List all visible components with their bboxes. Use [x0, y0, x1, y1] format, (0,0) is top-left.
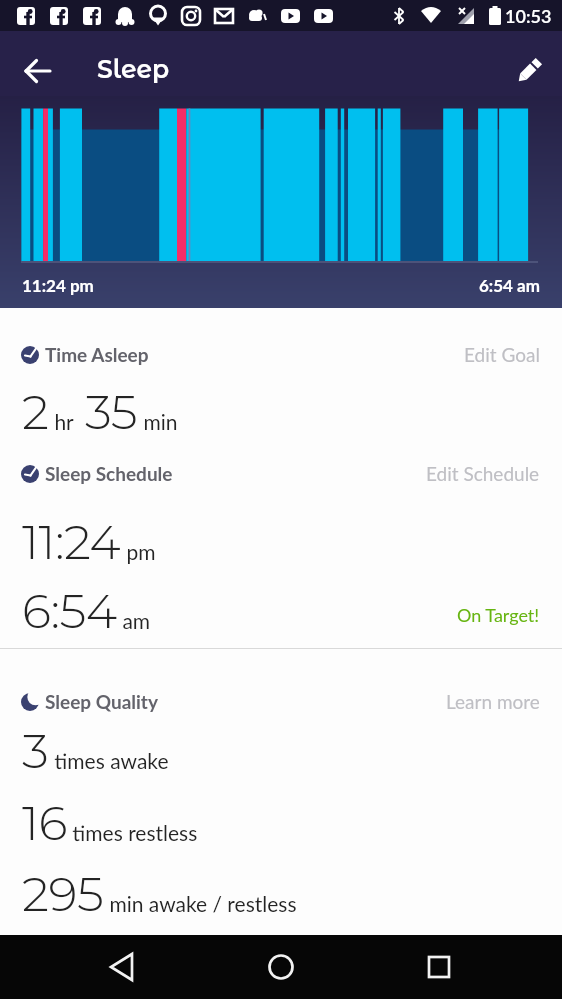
staticText: Sleep	[97, 54, 170, 84]
button[interactable]	[417, 945, 461, 989]
button[interactable]	[512, 54, 546, 88]
button[interactable]: Edit Goal	[464, 343, 540, 366]
button[interactable]: On Target!	[457, 604, 540, 626]
staticText: times restless	[67, 820, 198, 845]
staticText: pm	[121, 539, 156, 564]
button[interactable]	[259, 945, 303, 989]
staticText: Time Asleep	[45, 343, 149, 366]
staticText: 11:24 pm	[22, 275, 94, 295]
button[interactable]: Time Asleep	[21, 343, 149, 366]
staticText: 2	[22, 383, 49, 442]
staticText: Sleep Quality	[45, 690, 158, 713]
staticText: 295	[22, 865, 104, 924]
staticText: hr	[49, 409, 85, 434]
staticText: min awake / restless	[104, 891, 297, 916]
staticText: min	[138, 409, 178, 434]
button[interactable]: Sleep Quality	[21, 690, 158, 713]
button[interactable]	[23, 56, 53, 86]
button[interactable]: Sleep Schedule	[21, 462, 173, 485]
button[interactable]: Learn more	[446, 690, 540, 713]
staticText: times awake	[49, 748, 169, 773]
staticText: 10:53	[505, 5, 552, 27]
staticText: 6:54 am	[479, 275, 540, 295]
staticText: Sleep Schedule	[45, 462, 173, 485]
staticText: am	[117, 608, 151, 633]
button[interactable]	[101, 945, 145, 989]
staticText: 3	[22, 722, 49, 781]
button[interactable]: Edit Schedule	[426, 462, 540, 485]
staticText: 35	[85, 383, 138, 442]
staticText: 16	[22, 794, 67, 853]
staticText: 11:24	[22, 513, 121, 572]
staticText: 6:54	[22, 582, 117, 641]
